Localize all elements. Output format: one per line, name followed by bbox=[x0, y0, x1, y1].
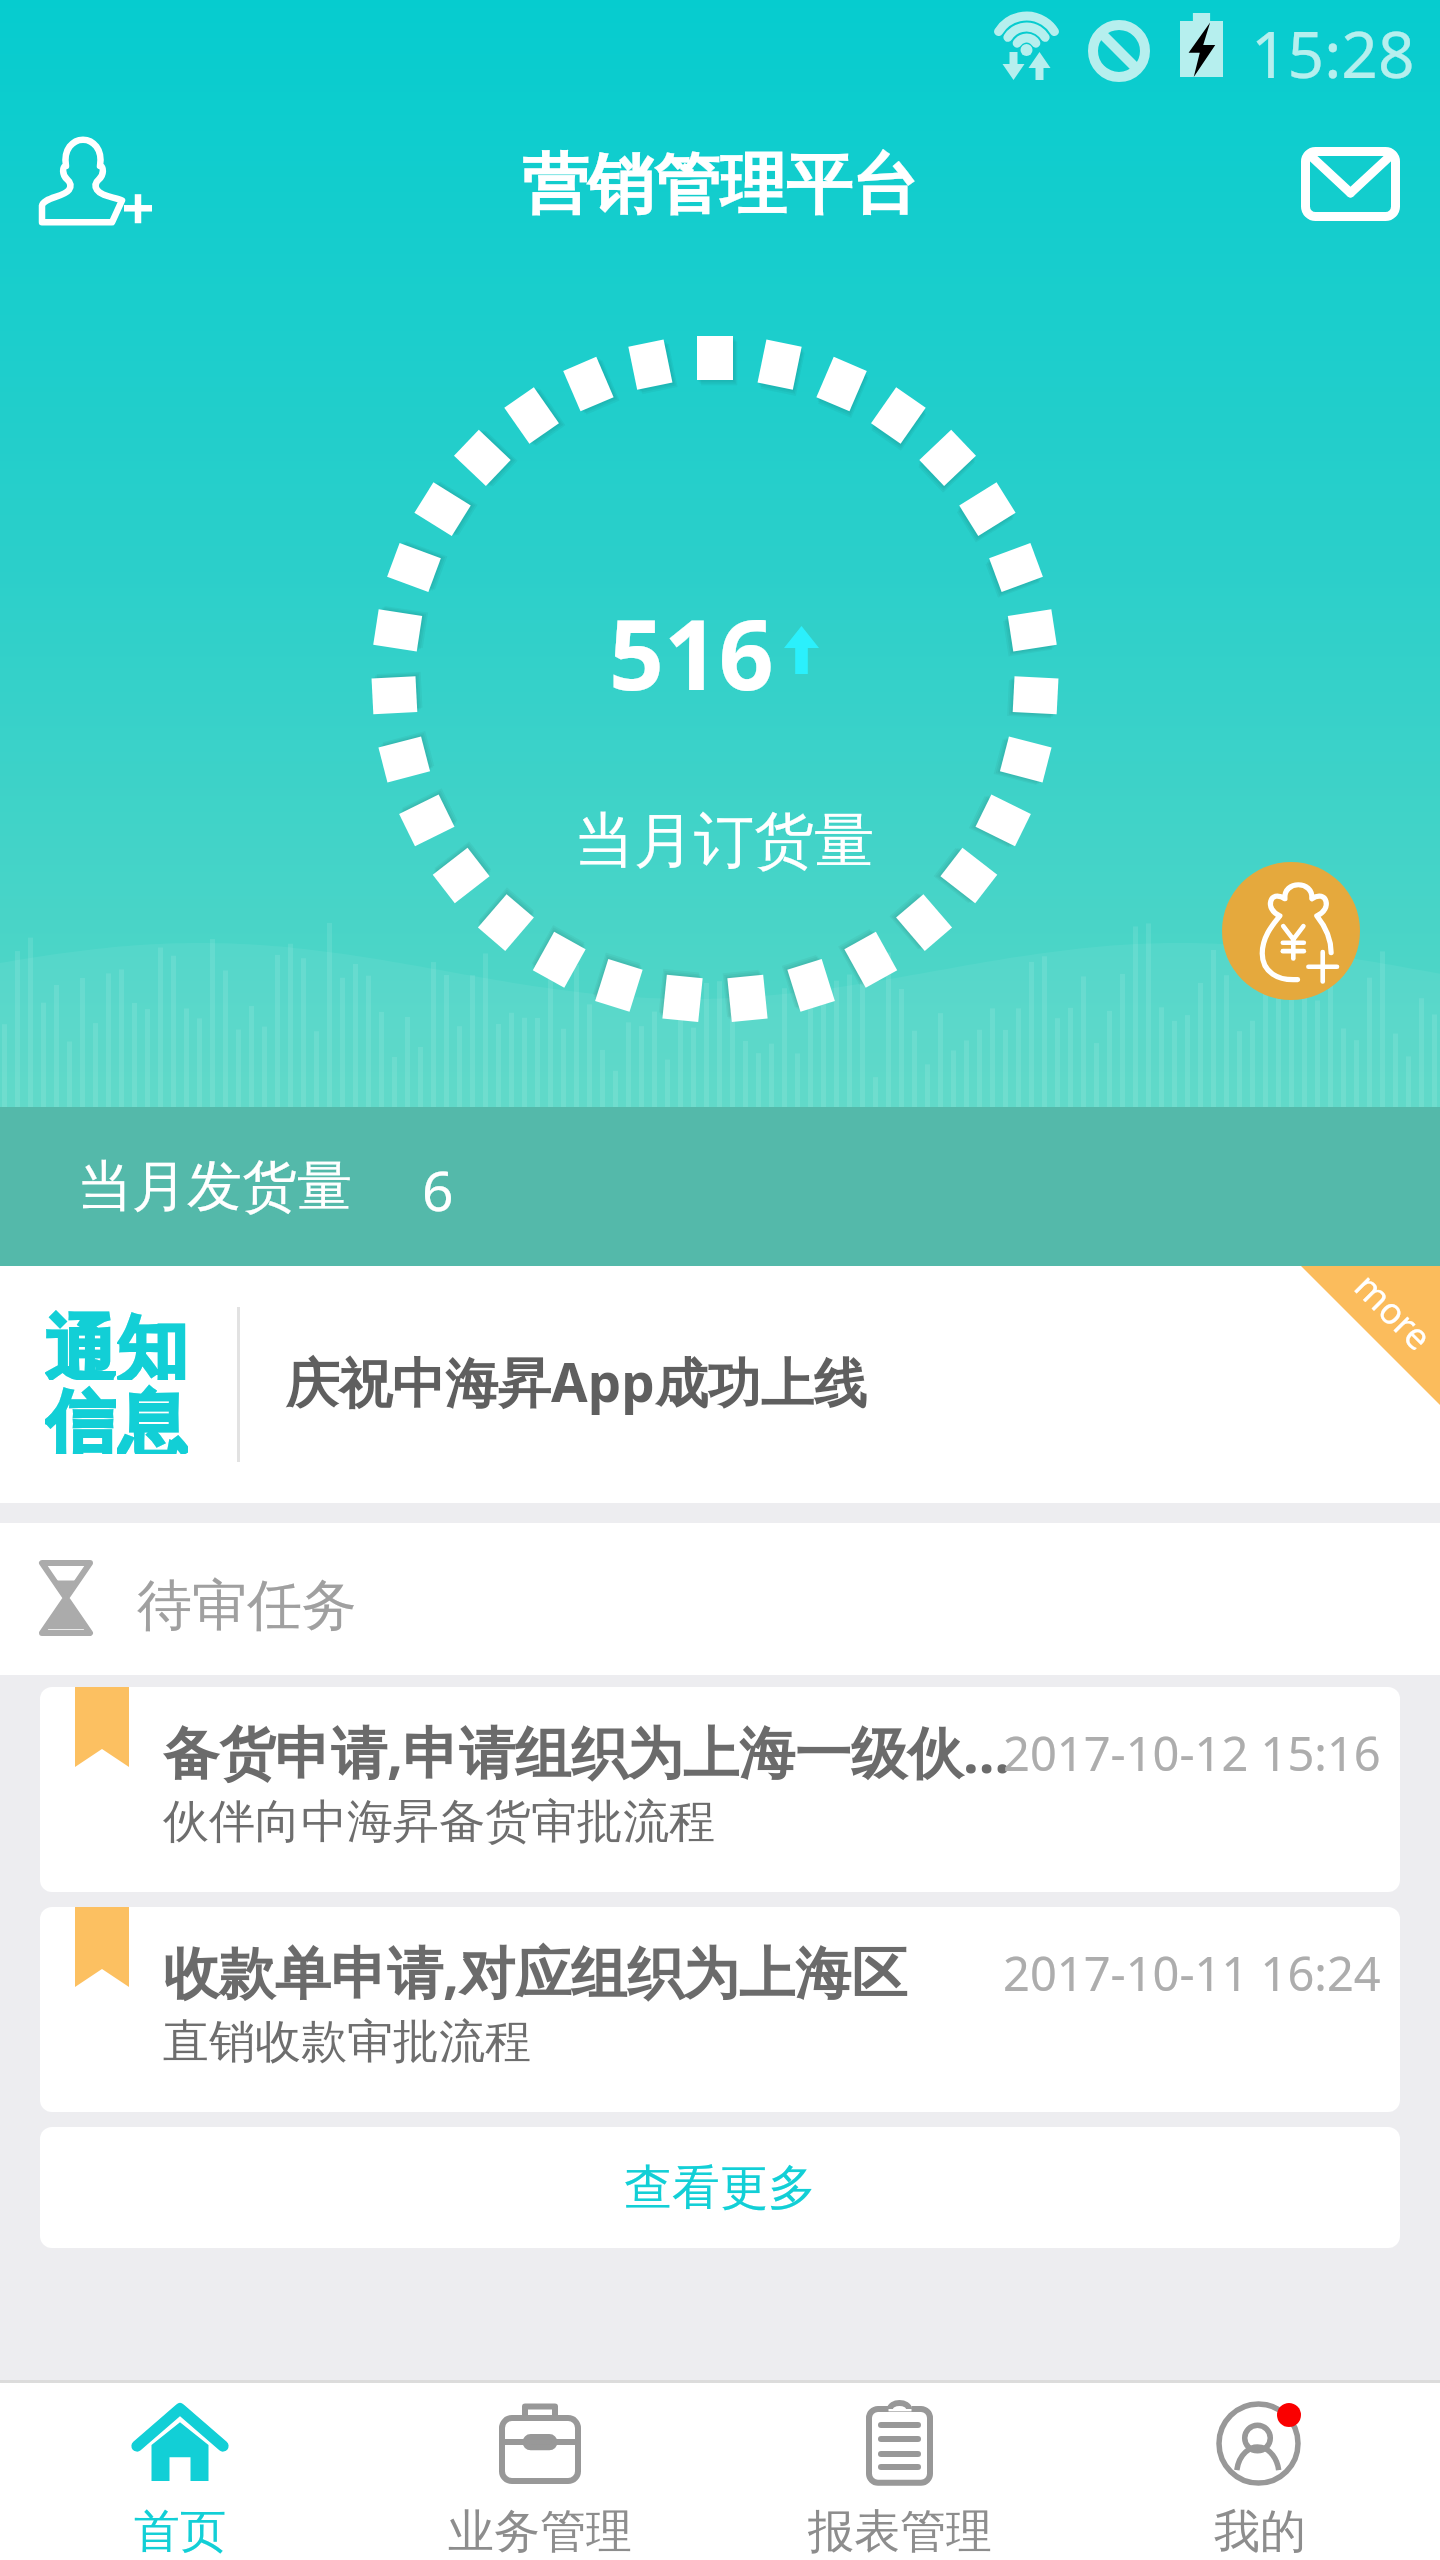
staticText: 收款单申请,对应组织为上海区 bbox=[163, 1933, 907, 2009]
staticText: 知 bbox=[117, 1306, 188, 1380]
staticText: 息 bbox=[117, 1380, 188, 1454]
staticText: 报表管理 bbox=[808, 2503, 992, 2560]
button[interactable]: 查看更多 bbox=[40, 2127, 1400, 2248]
button[interactable]: 通 bbox=[0, 1266, 1440, 1503]
button[interactable]: 当月发货量 bbox=[0, 1107, 1440, 1266]
staticText: 伙伴向中海昇备货审批流程 bbox=[163, 1793, 715, 1851]
button[interactable]: 我的 bbox=[1080, 2383, 1440, 2560]
staticText: 我的 bbox=[1214, 2503, 1306, 2560]
button[interactable]: 业务管理 bbox=[360, 2383, 720, 2560]
staticText: 直销收款审批流程 bbox=[163, 2013, 531, 2071]
staticText: 6 bbox=[422, 1152, 454, 1227]
staticText: 业务管理 bbox=[448, 2503, 632, 2560]
button[interactable]: Add contact bbox=[22, 118, 158, 244]
staticText: 首页 bbox=[134, 2503, 226, 2560]
staticText: 查看更多 bbox=[624, 2158, 816, 2218]
button[interactable]: 备货申请,申请组织为上海一级伙... bbox=[40, 1687, 1400, 1892]
staticText: more bbox=[1345, 1262, 1440, 1360]
button[interactable]: Add payment bbox=[1222, 862, 1360, 1000]
staticText: 当月发货量 bbox=[77, 1152, 352, 1221]
staticText: 备货申请,申请组织为上海一级伙... bbox=[163, 1713, 1011, 1789]
staticText: 通 bbox=[45, 1306, 116, 1380]
staticText: 营销管理平台 bbox=[522, 143, 918, 226]
staticText: 当月订货量 bbox=[574, 803, 874, 879]
button[interactable]: 报表管理 bbox=[720, 2383, 1080, 2560]
button[interactable]: Messages bbox=[1282, 128, 1418, 240]
staticText: 信 bbox=[45, 1380, 116, 1454]
button[interactable]: 收款单申请,对应组织为上海区 bbox=[40, 1907, 1400, 2112]
staticText: 2017-10-11 16:24 bbox=[1003, 1941, 1381, 2005]
staticText: 庆祝中海昇App成功上线 bbox=[286, 1345, 867, 1417]
button[interactable]: 首页 bbox=[0, 2383, 360, 2560]
staticText: 15:28 bbox=[1251, 10, 1415, 97]
staticText: 2017-10-12 15:16 bbox=[1003, 1721, 1381, 1785]
staticText: 待审任务 bbox=[137, 1571, 357, 1640]
staticText: 516 bbox=[609, 587, 774, 718]
